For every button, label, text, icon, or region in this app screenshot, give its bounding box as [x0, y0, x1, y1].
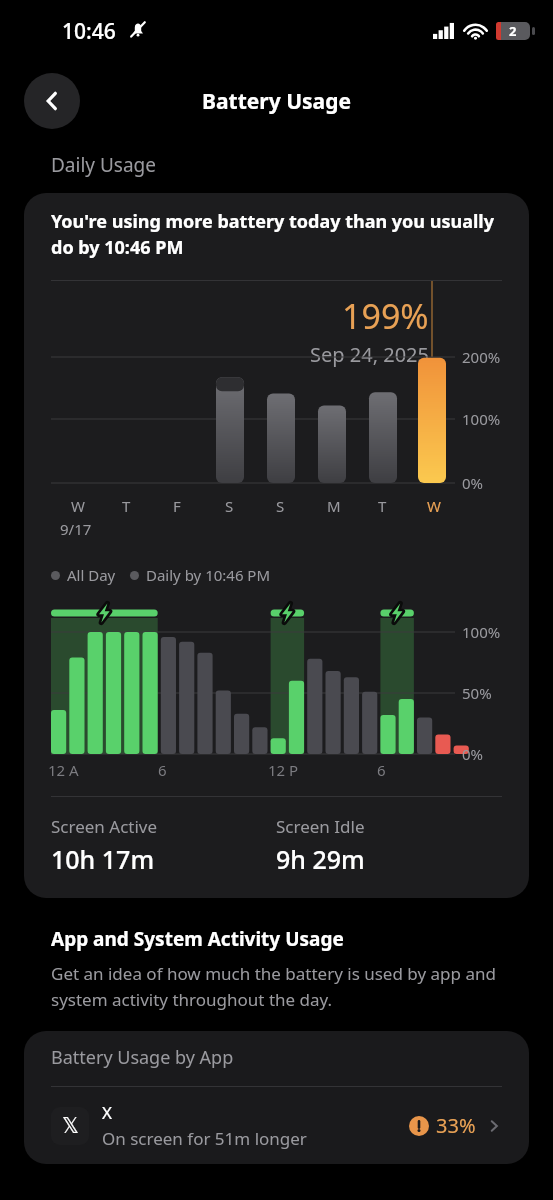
staticText: 6: [158, 760, 167, 780]
staticText: All Day: [67, 565, 116, 585]
staticText: App and System Activity Usage: [51, 926, 344, 952]
staticText: You're using more battery today than you…: [51, 209, 502, 260]
staticText: Screen Idle: [276, 815, 365, 838]
staticText: 10:46: [62, 17, 116, 46]
staticText: 0%: [462, 744, 484, 764]
staticText: 2: [509, 22, 517, 40]
button[interactable]: Back: [24, 73, 80, 129]
staticText: 33%: [436, 1112, 476, 1139]
staticText: Battery Usage by App: [51, 1045, 234, 1070]
staticText: 12 P: [268, 760, 299, 780]
staticText: M: [327, 496, 341, 516]
staticText: On screen for 51m longer: [102, 1127, 307, 1150]
staticText: 12 A: [48, 760, 79, 780]
button[interactable]: 𝕏: [24, 1087, 529, 1164]
staticText: 200%: [462, 347, 501, 367]
staticText: S: [276, 496, 285, 516]
staticText: 199%: [342, 293, 429, 339]
staticText: 𝕏: [62, 1114, 79, 1138]
staticText: 50%: [462, 683, 492, 703]
staticText: X: [102, 1101, 112, 1124]
staticText: 9h 29m: [276, 842, 365, 876]
staticText: 9/17: [60, 519, 92, 539]
staticText: W: [427, 496, 441, 516]
staticText: 100%: [462, 622, 501, 642]
staticText: Daily by 10:46 PM: [146, 565, 271, 585]
staticText: S: [225, 496, 234, 516]
staticText: T: [378, 496, 387, 516]
staticText: W: [71, 496, 85, 516]
staticText: Daily Usage: [51, 152, 157, 178]
staticText: 0%: [462, 473, 484, 493]
staticText: Get an idea of how much the battery is u…: [51, 962, 518, 1011]
staticText: 100%: [462, 409, 501, 429]
staticText: Battery Usage: [202, 87, 351, 116]
staticText: F: [173, 496, 181, 516]
staticText: Screen Active: [51, 815, 158, 838]
staticText: 10h 17m: [51, 842, 155, 876]
staticText: T: [122, 496, 131, 516]
staticText: Sep 24, 2025: [310, 341, 429, 368]
staticText: 6: [377, 760, 386, 780]
